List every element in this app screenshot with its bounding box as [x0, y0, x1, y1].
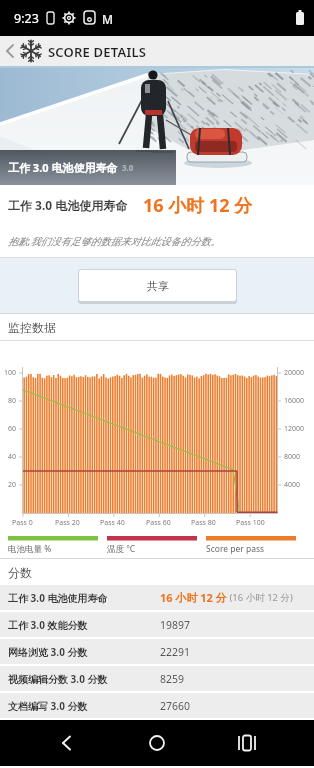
staticText: 20000	[284, 368, 305, 378]
staticText: 4000	[284, 480, 301, 490]
button[interactable]: 工作 3.0 效能分数	[0, 612, 314, 637]
staticText: 8000	[284, 452, 301, 462]
staticText: 40	[8, 452, 17, 462]
staticText: 8259	[160, 672, 185, 686]
staticText: 工作 3.0 电池使用寿命	[8, 197, 128, 213]
staticText: 文档编写 3.0 分数	[8, 699, 88, 713]
staticText: Score per pass	[206, 543, 265, 555]
staticText: 16 小时 12 分	[160, 590, 227, 605]
staticText: Pass 0	[12, 518, 33, 528]
staticText: SCORE DETAILS	[48, 43, 147, 61]
staticText: 温度 °C	[107, 543, 136, 555]
staticText: (16 小时 12 分)	[227, 591, 293, 604]
button[interactable]: SCORE DETAILS	[0, 36, 314, 66]
button[interactable]: 文档编写 3.0 分数	[0, 693, 314, 718]
staticText: 工作 3.0 电池使用寿命	[8, 160, 118, 175]
staticText: 19897	[160, 618, 191, 632]
staticText: 网络浏览 3.0 分数	[8, 645, 88, 659]
staticText: 工作 3.0 电池使用寿命	[8, 591, 108, 605]
staticText: M	[102, 11, 114, 27]
staticText: 工作 3.0 效能分数	[8, 618, 88, 632]
staticText: 3.0	[122, 162, 134, 173]
staticText: 电池电量 %	[8, 543, 52, 555]
button[interactable]: 工作 3.0 电池使用寿命	[0, 585, 314, 610]
staticText: 16 小时 12 分	[143, 193, 253, 218]
staticText: Pass 80	[191, 518, 216, 528]
button[interactable]: 视频编辑分数 3.0 分数	[0, 666, 314, 691]
staticText: 共享	[147, 279, 169, 293]
staticText: Pass 100	[236, 518, 265, 528]
staticText: 9:23	[14, 10, 39, 27]
staticText: 视频编辑分数 3.0 分数	[8, 672, 108, 686]
button[interactable]: 网络浏览 3.0 分数	[0, 639, 314, 664]
button[interactable]	[44, 720, 90, 766]
staticText: Pass 20	[55, 518, 80, 528]
staticText: 27660	[160, 699, 191, 713]
staticText: 监控数据	[8, 320, 56, 335]
staticText: 22291	[160, 645, 191, 659]
staticText: 20	[8, 480, 17, 490]
button[interactable]	[134, 720, 180, 766]
staticText: 12000	[284, 424, 305, 434]
staticText: 60	[8, 424, 17, 434]
staticText: 80	[8, 396, 17, 406]
staticText: 16000	[284, 396, 305, 406]
staticText: Pass 60	[146, 518, 171, 528]
staticText: 分数	[8, 565, 32, 580]
button[interactable]: 共享	[79, 270, 236, 301]
staticText: Pass 40	[100, 518, 125, 528]
staticText: 抱歉,我们没有足够的数据来对比此设备的分数。	[8, 234, 221, 248]
button[interactable]	[224, 720, 270, 766]
staticText: 100	[4, 368, 17, 378]
